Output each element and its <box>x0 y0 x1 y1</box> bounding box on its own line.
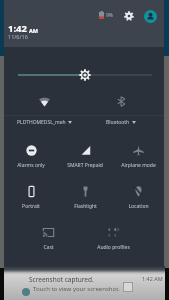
button[interactable]: Settings <box>121 8 136 23</box>
button[interactable]: Alarms only <box>4 145 58 173</box>
button[interactable]: Screenshot captured. <box>4 266 165 300</box>
staticText: 9% <box>106 12 114 19</box>
staticText: 1:42 AM <box>142 275 163 282</box>
staticText: Cast <box>43 244 54 251</box>
staticText: SMART Prepaid <box>67 162 103 169</box>
button[interactable]: SMART Prepaid <box>58 145 112 173</box>
button[interactable]: Brightness <box>0 63 169 85</box>
staticText: Screenshot captured. <box>29 275 94 284</box>
staticText: Alarms only <box>17 162 45 169</box>
button[interactable]: Audio profiles <box>86 227 140 255</box>
button[interactable]: PLDTHOMEDSL_meh <box>6 96 82 130</box>
staticText: Airplane mode <box>121 162 156 169</box>
button[interactable]: Airplane mode <box>111 145 165 173</box>
staticText: Touch to view your screenshot. <box>33 285 120 293</box>
button[interactable]: User profile <box>143 9 158 24</box>
staticText: Bluetooth <box>106 119 130 126</box>
button[interactable]: Bluetooth <box>83 96 159 130</box>
staticText: 1:42 <box>8 22 27 35</box>
staticText: PLDTHOMEDSL_meh <box>17 119 66 126</box>
staticText: Audio profiles <box>97 244 130 251</box>
staticText: Portrait <box>22 203 40 210</box>
button[interactable]: Location <box>111 186 165 214</box>
button[interactable]: Portrait <box>4 186 58 214</box>
staticText: Location <box>128 203 149 210</box>
staticText: Flashlight <box>74 203 97 210</box>
staticText: AM <box>29 27 38 34</box>
button[interactable]: Flashlight <box>58 186 112 214</box>
staticText: 11/6/16 <box>8 33 28 40</box>
button[interactable]: Cast <box>21 227 75 255</box>
